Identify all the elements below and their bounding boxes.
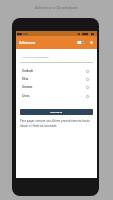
staticText: Gramas <box>22 85 33 89</box>
staticText: deixar o Histórico acionado <box>20 124 57 128</box>
staticText: Para pagar sempre seu último preenchimen… <box>20 119 90 123</box>
staticText: Adicionar <box>19 40 36 45</box>
button[interactable]: Litros <box>20 92 93 100</box>
staticText: Unidade <box>22 69 34 73</box>
staticText: Adicione a quantidade <box>23 55 49 58</box>
button[interactable]: Kilos <box>20 75 93 83</box>
button[interactable]: Perfil <box>90 41 93 44</box>
staticText: ADICIONAR <box>50 111 63 114</box>
staticText: Kilos <box>22 77 29 81</box>
button[interactable]: ADICIONAR <box>20 109 93 115</box>
button[interactable]: Alternar historico <box>77 41 84 44</box>
button[interactable]: Gramas <box>20 83 93 91</box>
staticText: Adicionar a Quantidade <box>35 5 78 10</box>
staticText: Litros <box>22 94 30 98</box>
button[interactable]: Unidade <box>20 67 93 75</box>
